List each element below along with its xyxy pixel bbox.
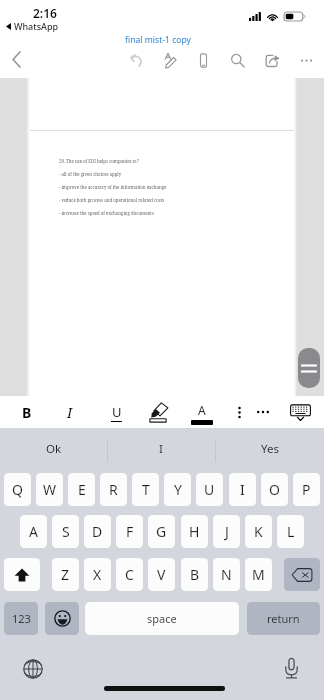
button[interactable]: Italic	[53, 396, 87, 428]
button[interactable]: S	[52, 515, 79, 548]
staticText: E	[78, 480, 86, 499]
staticText: P	[302, 480, 311, 499]
staticText: A	[29, 522, 38, 541]
staticText: S	[62, 522, 70, 541]
staticText: J	[225, 522, 229, 541]
button[interactable]: Ok	[0, 428, 107, 470]
staticText: W	[43, 480, 57, 499]
button[interactable]: N	[213, 558, 240, 591]
staticText: space	[147, 611, 177, 626]
staticText: return	[267, 611, 300, 626]
staticText: T	[142, 480, 150, 499]
staticText: D	[92, 522, 103, 541]
button[interactable]: H	[181, 515, 208, 548]
button[interactable]: D	[84, 515, 111, 548]
button[interactable]: L	[277, 515, 304, 548]
staticText: H	[189, 522, 200, 541]
button[interactable]: Hide keyboard	[283, 396, 317, 428]
staticText: L	[287, 522, 295, 541]
button[interactable]: Share	[257, 45, 287, 75]
staticText: U	[112, 403, 122, 421]
button[interactable]: E	[68, 473, 95, 506]
staticText: K	[254, 522, 263, 541]
button[interactable]: Q	[4, 473, 31, 506]
staticText: Yes	[261, 441, 279, 457]
button[interactable]: V	[148, 558, 175, 591]
button[interactable]: I	[107, 428, 215, 470]
staticText: - reduce both process and operational re…	[59, 197, 165, 203]
button[interactable]: Z	[52, 558, 79, 591]
button[interactable]: Underline	[99, 396, 133, 428]
button[interactable]: T	[132, 473, 159, 506]
staticText: V	[157, 565, 166, 584]
button[interactable]: Y	[164, 473, 191, 506]
button[interactable]: F	[116, 515, 143, 548]
button[interactable]: U	[196, 473, 223, 506]
button[interactable]: K	[245, 515, 272, 548]
button[interactable]: M	[245, 558, 272, 591]
button[interactable]: space	[85, 602, 239, 635]
button[interactable]: R	[100, 473, 127, 506]
staticText: F	[126, 522, 134, 541]
button[interactable]: Search	[222, 45, 252, 75]
staticText: U	[204, 480, 215, 499]
staticText: Q	[12, 480, 23, 499]
staticText: - all of the given choices apply	[59, 171, 122, 177]
button[interactable]: More	[246, 396, 280, 428]
button[interactable]: I	[229, 473, 256, 506]
button[interactable]: Text color	[185, 396, 219, 428]
staticText: A	[198, 402, 206, 418]
button[interactable]: Back	[2, 45, 30, 73]
button[interactable]: Shift	[4, 558, 40, 591]
staticText: R	[109, 480, 118, 499]
staticText: I	[240, 480, 245, 499]
button[interactable]: O	[261, 473, 288, 506]
staticText: G	[156, 522, 167, 541]
staticText: 2:16	[33, 5, 57, 21]
staticText: Ok	[46, 441, 62, 457]
button[interactable]: Device	[188, 45, 218, 75]
staticText: O	[269, 480, 280, 499]
button[interactable]: C	[116, 558, 143, 591]
button[interactable]: P	[293, 473, 320, 506]
button[interactable]: Undo	[121, 45, 151, 75]
button[interactable]: Return	[247, 602, 320, 635]
staticText: X	[93, 565, 102, 584]
staticText: I	[67, 403, 73, 422]
button[interactable]: Emoji	[45, 602, 79, 635]
button[interactable]: Change keyboard	[18, 654, 47, 683]
button[interactable]: Backspace	[284, 558, 320, 591]
staticText: B	[190, 565, 200, 584]
staticText: M	[252, 565, 265, 584]
button[interactable]: B	[181, 558, 208, 591]
staticText: - increase the speed of exchanging docum…	[59, 210, 154, 216]
button[interactable]: Bold	[10, 396, 44, 428]
button[interactable]: Dictate	[277, 654, 306, 683]
staticText: Y	[174, 480, 182, 499]
button[interactable]: More options	[222, 396, 256, 428]
button[interactable]: Scroll	[298, 348, 320, 388]
staticText: Z	[61, 565, 70, 584]
staticText: I	[159, 441, 163, 457]
button[interactable]: J	[213, 515, 240, 548]
button[interactable]: W	[36, 473, 63, 506]
button[interactable]: More	[291, 45, 321, 75]
staticText: C	[125, 565, 134, 584]
staticText: N	[221, 565, 232, 584]
button[interactable]: A	[20, 515, 47, 548]
staticText: 29. The use of EDI helps companies to?	[59, 158, 139, 164]
button[interactable]: X	[84, 558, 111, 591]
button[interactable]: Highlight	[143, 396, 177, 428]
button[interactable]: G	[148, 515, 175, 548]
staticText: B	[22, 403, 32, 422]
staticText: final mist-1 copy	[125, 34, 191, 46]
button[interactable]: Yes	[215, 428, 324, 470]
staticText: WhatsApp	[14, 20, 59, 32]
staticText: - improve the accuracy of the informatio…	[59, 184, 167, 190]
staticText: 123	[12, 611, 31, 626]
button[interactable]: Numbers	[4, 602, 38, 635]
button[interactable]: Markup	[154, 45, 184, 75]
